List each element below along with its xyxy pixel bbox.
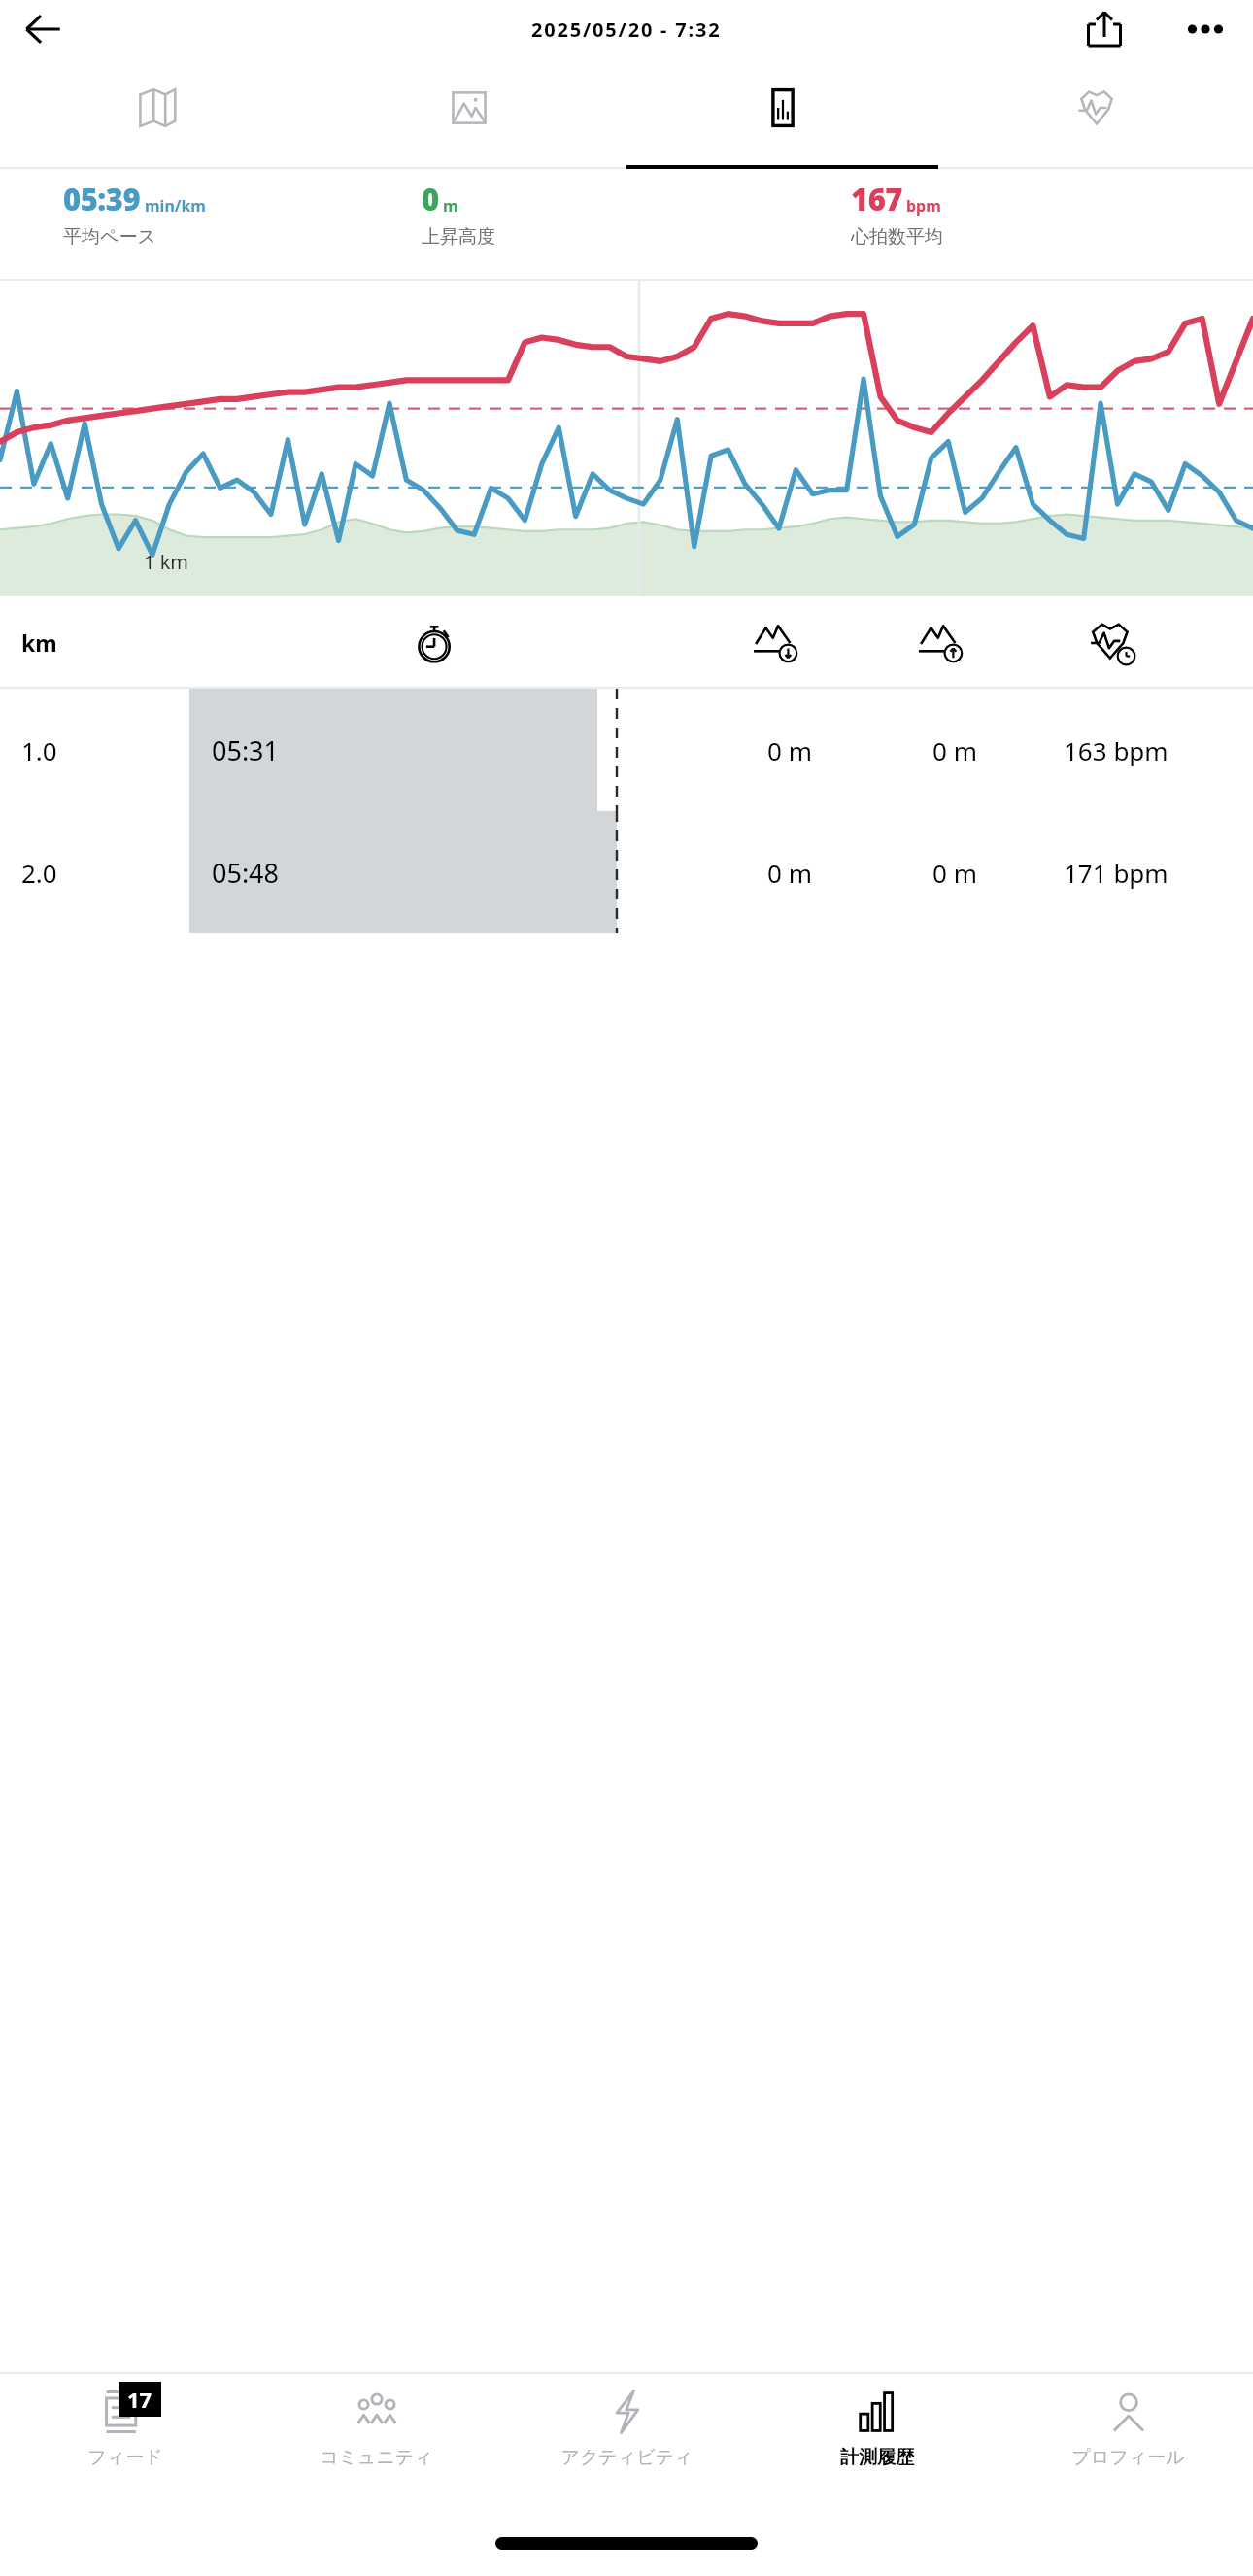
staticText: 0 m xyxy=(767,856,812,890)
staticText: 2025/05/20 - 7:32 xyxy=(531,17,722,43)
staticText: 163 bpm xyxy=(1064,733,1168,767)
other: Elevation loss xyxy=(918,618,968,668)
staticText: 0 m xyxy=(932,733,977,767)
staticText: 心拍数平均 xyxy=(851,225,943,249)
button[interactable]: 1.0 xyxy=(0,689,1253,811)
staticText: 171 bpm xyxy=(1064,856,1168,890)
other: Average heart rate xyxy=(1088,618,1138,668)
button[interactable]: プロフィール xyxy=(1002,2374,1253,2518)
staticText: 167 xyxy=(851,179,902,220)
button[interactable]: Photos tab xyxy=(313,58,626,169)
staticText: 計測履歴 xyxy=(840,2446,914,2469)
staticText: コミュニティ xyxy=(320,2446,433,2469)
staticText: 0 m xyxy=(767,733,812,767)
staticText: 0 m xyxy=(932,856,977,890)
staticText: 上昇高度 xyxy=(422,225,495,249)
button[interactable]: Map tab xyxy=(0,58,313,169)
button[interactable]: 2.0 xyxy=(0,811,1253,933)
staticText: 1.0 xyxy=(21,733,57,767)
button[interactable]: More options xyxy=(1179,3,1232,55)
button[interactable]: Share xyxy=(1080,5,1129,53)
staticText: min/km xyxy=(145,195,206,217)
button[interactable]: コミュニティ xyxy=(251,2374,501,2518)
button[interactable]: Back xyxy=(17,4,68,54)
staticText: bpm xyxy=(906,195,941,217)
staticText: 平均ペース xyxy=(63,225,156,249)
staticText: プロフィール xyxy=(1071,2446,1185,2469)
other: Duration xyxy=(413,621,457,665)
staticText: 05:39 xyxy=(63,179,141,220)
staticText: アクティビティ xyxy=(560,2446,694,2469)
button[interactable]: Heart rate tab xyxy=(939,58,1253,169)
staticText: 2.0 xyxy=(21,856,57,890)
staticText: フィード xyxy=(87,2446,163,2469)
staticText: 17 xyxy=(127,2385,152,2414)
button[interactable]: 計測履歴 xyxy=(752,2374,1002,2518)
other: Elevation gain xyxy=(753,618,803,668)
button[interactable]: アクティビティ xyxy=(501,2374,752,2518)
staticText: 1 km xyxy=(144,549,189,575)
staticText: 0 xyxy=(422,179,439,220)
staticText: m xyxy=(443,195,458,217)
button[interactable]: 17 xyxy=(0,2374,251,2518)
button[interactable]: Charts tab xyxy=(626,58,939,169)
staticText: 05:31 xyxy=(212,732,280,768)
staticText: 05:48 xyxy=(212,855,280,891)
staticText: km xyxy=(21,627,57,658)
